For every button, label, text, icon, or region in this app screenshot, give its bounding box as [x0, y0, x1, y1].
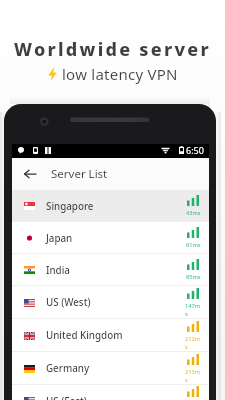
staticText: 213ms: [185, 368, 201, 384]
staticText: 6:50: [186, 144, 204, 156]
staticText: Singapore: [46, 200, 94, 213]
staticText: low latency VPN: [62, 64, 178, 84]
staticText: 61ms: [186, 241, 201, 249]
staticText: United Kingdom: [46, 329, 123, 342]
button[interactable]: US (East): [12, 385, 209, 400]
staticText: Worldwide server: [14, 37, 211, 62]
staticText: 147ms: [185, 302, 201, 318]
button[interactable]: US (West): [12, 286, 209, 319]
staticText: 43ms: [186, 209, 201, 217]
staticText: US (East): [46, 395, 87, 400]
button[interactable]: United Kingdom: [12, 319, 209, 352]
button[interactable]: Singapore: [12, 190, 209, 222]
staticText: India: [46, 264, 70, 277]
staticText: Germany: [46, 362, 90, 375]
staticText: US (West): [46, 296, 91, 309]
staticText: 212ms: [185, 335, 201, 351]
button[interactable]: Back: [21, 165, 39, 183]
staticText: Server List: [51, 166, 108, 182]
button[interactable]: Japan: [12, 222, 209, 254]
button[interactable]: Germany: [12, 352, 209, 385]
staticText: Japan: [46, 232, 73, 245]
button[interactable]: India: [12, 254, 209, 286]
staticText: 85ms: [186, 273, 201, 281]
